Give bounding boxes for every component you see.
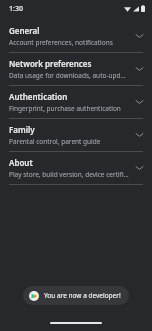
staticText: General <box>9 25 40 36</box>
staticText: 1:30 <box>9 4 23 14</box>
other: Expand Authentication <box>133 96 145 108</box>
other: Expand Network preferences <box>133 63 145 75</box>
staticText: Play store, build version, device certif… <box>9 170 129 179</box>
button[interactable]: About <box>0 152 152 184</box>
staticText: You are now a developer! <box>44 291 121 300</box>
button[interactable]: General <box>0 20 152 52</box>
button[interactable]: Family <box>0 119 152 151</box>
button[interactable]: Authentication <box>0 86 152 118</box>
other: Expand Family <box>133 129 145 141</box>
button[interactable]: You are now a developer! <box>23 286 129 305</box>
staticText: Family <box>9 124 35 135</box>
other: Expand About <box>133 162 145 174</box>
button[interactable]: Network preferences <box>0 53 152 85</box>
staticText: Authentication <box>9 91 68 102</box>
staticText: Fingerprint, purchase authentication <box>9 104 121 113</box>
staticText: Network preferences <box>9 58 92 69</box>
staticText: Data usage for downloads, auto-updates <box>9 71 129 80</box>
staticText: About <box>9 157 33 168</box>
staticText: Parental control, parent guide <box>9 137 101 146</box>
other: Expand General <box>133 30 145 42</box>
staticText: Account preferences, notifications <box>9 38 113 47</box>
